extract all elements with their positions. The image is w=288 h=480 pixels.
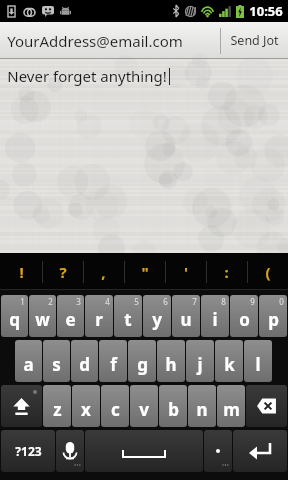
- staticText: v: [139, 398, 149, 421]
- staticText: d: [79, 353, 90, 376]
- button[interactable]: Send Jot: [221, 22, 288, 59]
- staticText: m: [223, 398, 240, 421]
- staticText: l: [255, 353, 261, 376]
- staticText: 8: [221, 296, 226, 307]
- staticText: x: [81, 398, 91, 421]
- button[interactable]: q: [1, 295, 28, 337]
- staticText: p: [268, 308, 279, 331]
- staticText: YourAddress@email.com: [7, 31, 183, 51]
- staticText: o: [239, 308, 250, 331]
- staticText: ": [141, 262, 149, 282]
- button[interactable]: Space: [85, 430, 203, 472]
- staticText: e: [65, 308, 76, 331]
- button[interactable]: n: [188, 385, 216, 427]
- button[interactable]: s: [43, 340, 70, 382]
- staticText: t: [124, 308, 132, 331]
- staticText: 1: [20, 296, 25, 307]
- button[interactable]: w: [29, 295, 56, 337]
- button[interactable]: :: [206, 253, 247, 290]
- button[interactable]: i: [201, 295, 229, 337]
- staticText: b: [168, 398, 179, 421]
- staticText: i: [212, 308, 218, 331]
- button[interactable]: Shift: [1, 385, 42, 427]
- staticText: s: [52, 353, 61, 376]
- button[interactable]: o: [230, 295, 258, 337]
- button[interactable]: v: [130, 385, 158, 427]
- staticText: ': [184, 262, 188, 282]
- button[interactable]: m: [217, 385, 245, 427]
- button[interactable]: a: [15, 340, 42, 382]
- staticText: q: [9, 308, 20, 331]
- staticText: c: [111, 398, 120, 421]
- button[interactable]: k: [215, 340, 243, 382]
- staticText: u: [180, 308, 192, 331]
- staticText: w: [35, 308, 50, 331]
- button[interactable]: ': [165, 253, 206, 290]
- staticText: !: [19, 262, 24, 282]
- staticText: ?123: [15, 443, 42, 459]
- staticText: (: [265, 262, 271, 282]
- button[interactable]: x: [72, 385, 100, 427]
- staticText: Send Jot: [230, 32, 279, 49]
- staticText: 6: [163, 296, 168, 307]
- staticText: z: [53, 398, 62, 421]
- button[interactable]: j: [186, 340, 214, 382]
- button[interactable]: e: [57, 295, 84, 337]
- staticText: f: [110, 353, 117, 376]
- button[interactable]: Never forget anything!: [0, 59, 288, 253]
- staticText: ?: [59, 262, 67, 282]
- button[interactable]: p: [259, 295, 287, 337]
- button[interactable]: l: [244, 340, 272, 382]
- button[interactable]: c: [101, 385, 129, 427]
- staticText: Never forget anything!: [7, 66, 167, 86]
- button[interactable]: d: [71, 340, 98, 382]
- staticText: y: [152, 308, 162, 331]
- staticText: 10:56: [249, 2, 283, 20]
- button[interactable]: (: [247, 253, 288, 290]
- button[interactable]: r: [85, 295, 113, 337]
- button[interactable]: ?: [42, 253, 83, 290]
- staticText: k: [224, 353, 235, 376]
- button[interactable]: z: [43, 385, 71, 427]
- button[interactable]: u: [172, 295, 200, 337]
- button[interactable]: y: [143, 295, 171, 337]
- staticText: n: [196, 398, 208, 421]
- button[interactable]: h: [157, 340, 185, 382]
- button[interactable]: Voice input: [56, 430, 84, 472]
- staticText: 4: [105, 296, 110, 307]
- staticText: 2: [48, 296, 53, 307]
- button[interactable]: !: [0, 253, 42, 290]
- staticText: a: [23, 353, 34, 376]
- staticText: g: [137, 353, 148, 376]
- button[interactable]: ": [124, 253, 165, 290]
- button[interactable]: ,: [83, 253, 124, 290]
- staticText: j: [197, 353, 203, 376]
- button[interactable]: f: [99, 340, 127, 382]
- button[interactable]: Backspace: [246, 385, 287, 427]
- button[interactable]: Enter: [233, 430, 287, 472]
- staticText: 9: [250, 296, 255, 307]
- staticText: 7: [192, 296, 197, 307]
- button[interactable]: Period: [204, 430, 232, 472]
- staticText: r: [95, 308, 103, 331]
- button[interactable]: t: [114, 295, 142, 337]
- staticText: :: [224, 262, 229, 282]
- staticText: 5: [134, 296, 139, 307]
- button[interactable]: b: [159, 385, 187, 427]
- staticText: 0: [279, 296, 284, 307]
- button[interactable]: ?123: [1, 430, 55, 472]
- staticText: ,: [101, 262, 106, 282]
- staticText: h: [165, 353, 177, 376]
- staticText: 3: [76, 296, 81, 307]
- button[interactable]: YourAddress@email.com: [0, 22, 220, 59]
- button[interactable]: g: [128, 340, 156, 382]
